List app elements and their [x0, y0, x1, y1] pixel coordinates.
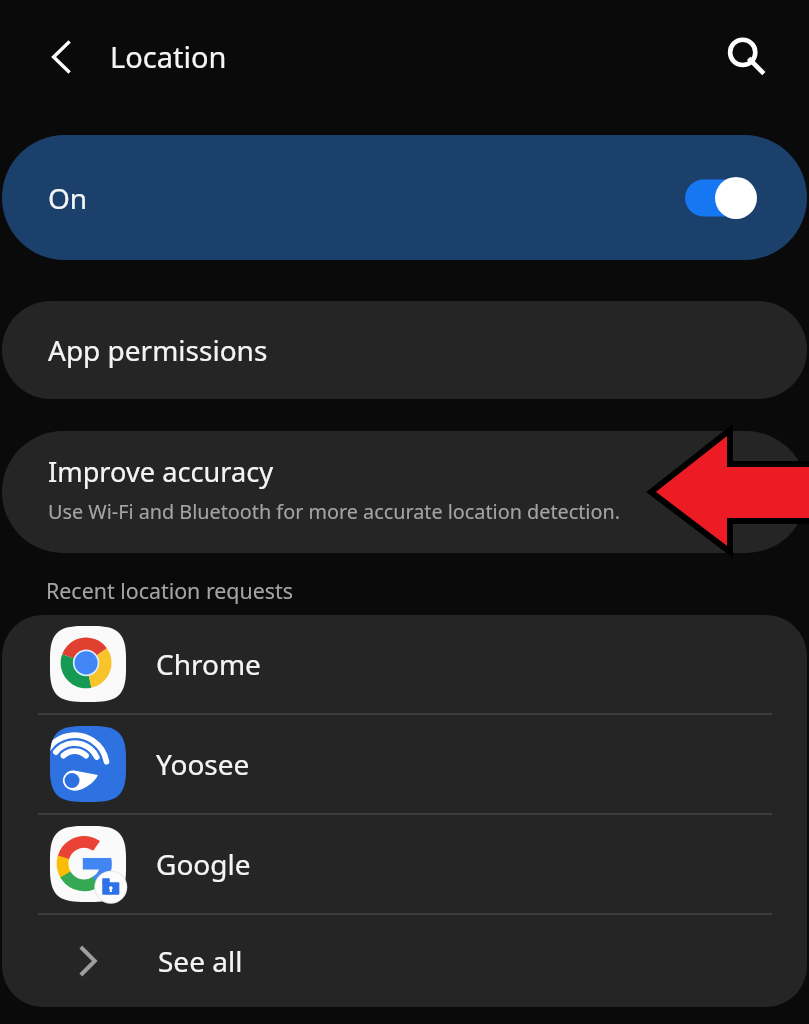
button[interactable]: App permissions [2, 301, 807, 399]
button[interactable]: Location toggle [685, 175, 757, 221]
button[interactable]: Back [30, 25, 94, 89]
staticText: Location [110, 37, 227, 76]
button[interactable]: Search [714, 25, 778, 89]
staticText: App permissions [48, 331, 268, 369]
staticText: On [48, 179, 88, 217]
button[interactable]: On [2, 135, 807, 260]
staticText: Recent location requests [46, 576, 294, 605]
button[interactable]: Google [2, 815, 807, 913]
staticText: Chrome [156, 645, 261, 683]
staticText: Yoosee [156, 745, 250, 783]
staticText: See all [158, 942, 243, 980]
staticText: Google [156, 845, 251, 883]
staticText: Improve accuracy [48, 453, 274, 490]
button[interactable]: See all [2, 915, 807, 1007]
button[interactable]: Improve accuracy [2, 431, 807, 553]
staticText: Use Wi-Fi and Bluetooth for more accurat… [48, 498, 620, 525]
button[interactable]: Yoosee [2, 715, 807, 813]
button[interactable]: Chrome [2, 615, 807, 713]
